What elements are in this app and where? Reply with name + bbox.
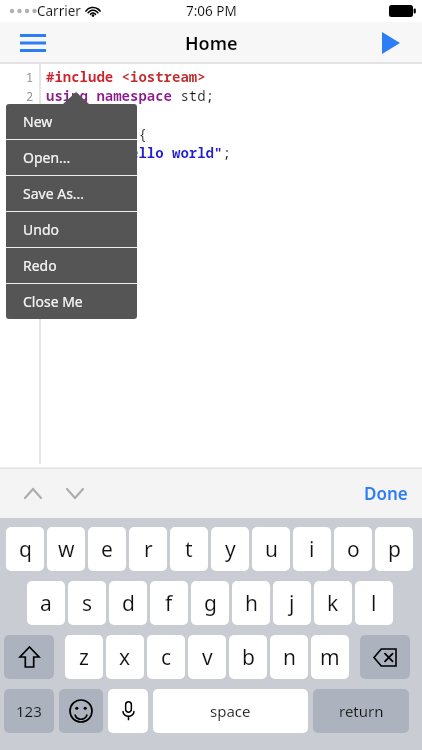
staticText: 6 — [26, 164, 34, 180]
staticText: Carrier — [37, 2, 81, 20]
button[interactable]: a — [27, 581, 65, 625]
staticText: 7:06 PM — [186, 2, 237, 20]
button[interactable]: d — [109, 581, 147, 625]
button[interactable]: y — [211, 527, 249, 571]
staticText: b — [242, 643, 255, 672]
staticText: n — [283, 643, 296, 672]
staticText: Home — [185, 31, 238, 56]
button[interactable]: m — [311, 635, 349, 679]
button[interactable]: v — [188, 635, 226, 679]
staticText: Undo — [23, 220, 59, 239]
button[interactable]: Close Me — [6, 284, 137, 319]
staticText: using namespace std; — [46, 86, 214, 105]
button[interactable]: space — [153, 689, 308, 733]
button[interactable]: Save As... — [6, 176, 137, 211]
button[interactable]: b — [229, 635, 267, 679]
button[interactable]: r — [129, 527, 167, 571]
staticText: a — [40, 589, 52, 618]
button[interactable]: j — [273, 581, 311, 625]
staticText: z — [79, 643, 89, 672]
button[interactable]: Open... — [6, 140, 137, 175]
button[interactable]: f — [150, 581, 188, 625]
staticText: h — [245, 589, 258, 618]
staticText: Open... — [23, 148, 71, 167]
button[interactable]: k — [314, 581, 352, 625]
staticText: cout<<"Hello world"; — [46, 143, 231, 162]
staticText: l — [371, 589, 377, 618]
staticText: s — [82, 589, 93, 618]
button[interactable]: p — [375, 527, 413, 571]
staticText: 2 — [26, 88, 34, 104]
button[interactable]: s — [68, 581, 106, 625]
staticText: d — [122, 589, 135, 618]
staticText: 3 — [26, 107, 34, 123]
staticText: v — [202, 643, 213, 672]
staticText: int main() { — [46, 124, 147, 143]
button[interactable]: u — [252, 527, 290, 571]
button[interactable]: g — [191, 581, 229, 625]
staticText: 8 — [26, 202, 34, 218]
staticText: space — [210, 701, 251, 721]
button[interactable]: i — [293, 527, 331, 571]
button[interactable]: 123 — [4, 689, 54, 733]
button[interactable]: Menu — [12, 25, 54, 61]
button[interactable]: Previous — [16, 476, 50, 510]
staticText: j — [289, 589, 295, 618]
button[interactable]: n — [270, 635, 308, 679]
button[interactable]: e — [88, 527, 126, 571]
button[interactable]: w — [47, 527, 85, 571]
staticText: x — [119, 643, 131, 672]
button[interactable]: l — [355, 581, 393, 625]
staticText: 7 — [26, 183, 34, 199]
staticText: t — [185, 535, 193, 564]
button[interactable]: Done — [364, 482, 408, 505]
staticText: return — [339, 701, 384, 721]
button[interactable]: z — [65, 635, 103, 679]
staticText: g — [204, 589, 217, 618]
staticText: 1 — [26, 69, 34, 85]
button[interactable]: o — [334, 527, 372, 571]
button[interactable]: c — [147, 635, 185, 679]
button[interactable]: Dictation — [108, 689, 148, 733]
button[interactable]: New — [6, 104, 137, 139]
button[interactable]: Redo — [6, 248, 137, 283]
staticText: Done — [364, 482, 408, 505]
staticText: e — [101, 535, 113, 564]
staticText: Close Me — [23, 292, 83, 311]
staticText: 4 — [26, 126, 34, 142]
button[interactable]: return — [313, 689, 409, 733]
staticText: w — [58, 535, 75, 564]
button[interactable]: Shift — [4, 635, 54, 679]
staticText: c — [161, 643, 172, 672]
staticText: o — [347, 535, 360, 564]
button[interactable]: Undo — [6, 212, 137, 247]
staticText: Redo — [23, 256, 57, 275]
button[interactable]: x — [106, 635, 144, 679]
button[interactable]: Backspace — [360, 635, 410, 679]
staticText: return 0; — [46, 162, 139, 181]
staticText: New — [23, 112, 53, 131]
staticText: 123 — [16, 701, 42, 721]
button[interactable]: Next — [58, 476, 92, 510]
staticText: i — [309, 535, 315, 564]
button[interactable]: Emoji — [59, 689, 103, 733]
staticText: Save As... — [23, 184, 85, 203]
staticText: u — [265, 535, 278, 564]
button[interactable]: t — [170, 527, 208, 571]
staticText: m — [320, 643, 340, 672]
staticText: r — [144, 535, 153, 564]
button[interactable]: h — [232, 581, 270, 625]
staticText: k — [327, 589, 339, 618]
staticText: f — [165, 589, 173, 618]
staticText: 5 — [26, 145, 34, 161]
staticText: p — [388, 535, 401, 564]
button[interactable]: Run — [370, 25, 412, 61]
button[interactable]: q — [6, 527, 44, 571]
staticText: #include <iostream> — [46, 67, 206, 86]
staticText: q — [19, 535, 32, 564]
staticText: y — [225, 535, 236, 564]
